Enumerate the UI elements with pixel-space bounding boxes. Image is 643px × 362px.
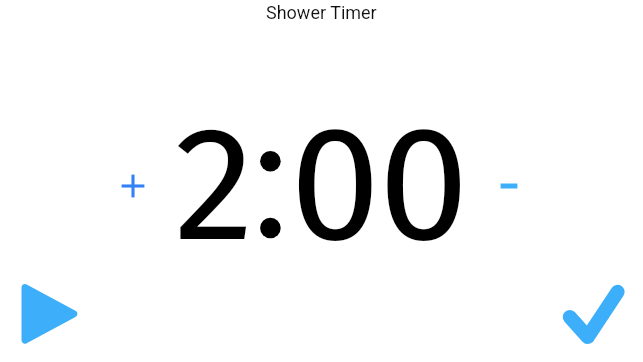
button[interactable]: Done	[553, 277, 633, 355]
staticText: 00	[290, 88, 468, 282]
staticText: Shower Timer	[266, 2, 377, 23]
staticText: 2	[174, 88, 255, 282]
button[interactable]: Start timer	[12, 275, 88, 353]
button[interactable]: Add one minute	[110, 163, 156, 209]
button[interactable]: Subtract one minute	[486, 163, 532, 209]
